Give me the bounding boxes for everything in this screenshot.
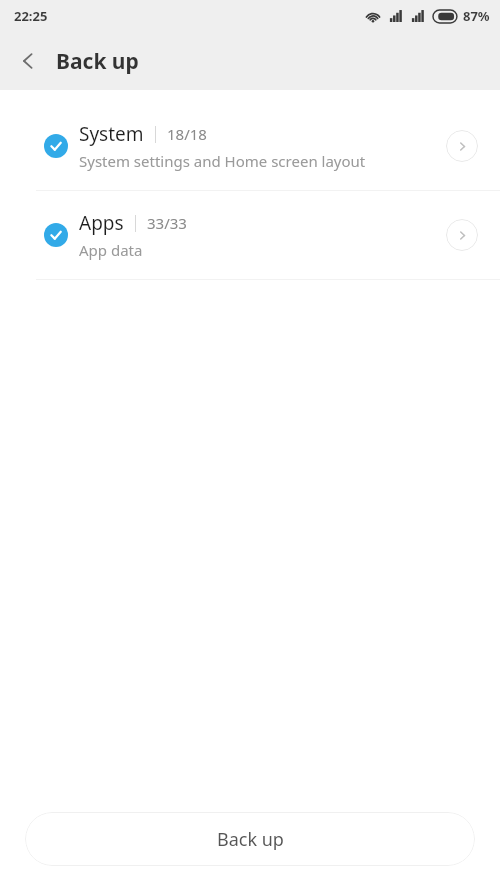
staticText: 22:25 <box>14 7 48 25</box>
staticText: App data <box>79 240 143 260</box>
staticText: 18/18 <box>167 124 207 144</box>
staticText: 87% <box>463 7 490 25</box>
button[interactable]: Back up <box>25 812 475 866</box>
staticText: System <box>79 121 144 147</box>
button[interactable]: System <box>0 102 500 190</box>
staticText: Apps <box>79 210 124 236</box>
staticText: Back up <box>217 827 284 852</box>
staticText: System settings and Home screen layout <box>79 151 366 171</box>
button[interactable]: Open details <box>446 219 478 251</box>
staticText: 33/33 <box>147 213 187 233</box>
button[interactable]: Open details <box>446 130 478 162</box>
button[interactable]: Back <box>4 37 52 85</box>
button[interactable]: Apps <box>0 191 500 279</box>
staticText: Back up <box>56 47 139 76</box>
